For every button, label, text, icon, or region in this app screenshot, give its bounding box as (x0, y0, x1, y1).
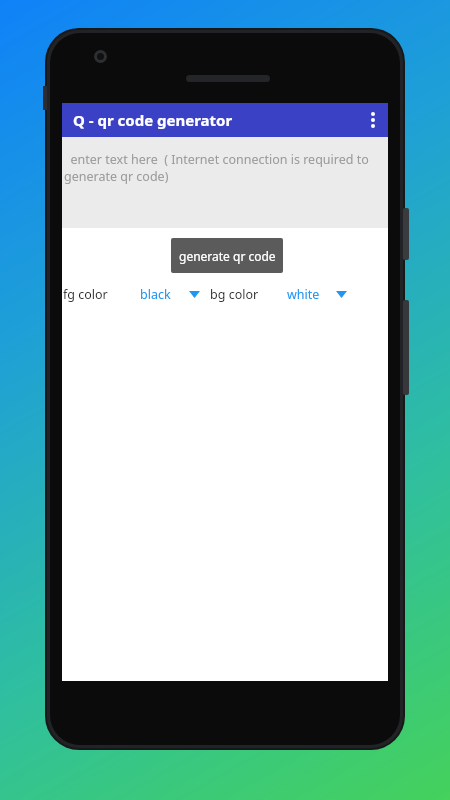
staticText: black (140, 286, 171, 303)
button[interactable]: generate qr code (171, 238, 283, 273)
button[interactable]: enter text here ( Internet connection is… (62, 137, 388, 228)
button[interactable]: More options (358, 103, 388, 137)
staticText: fg color (63, 286, 108, 303)
staticText: bg color (210, 286, 259, 303)
staticText: enter text here ( Internet connection is… (64, 151, 382, 185)
staticText: white (287, 286, 320, 303)
button[interactable]: white (287, 282, 349, 306)
button[interactable]: black (140, 282, 202, 306)
staticText: Q - qr code generator (73, 110, 233, 130)
staticText: generate qr code (179, 248, 276, 264)
